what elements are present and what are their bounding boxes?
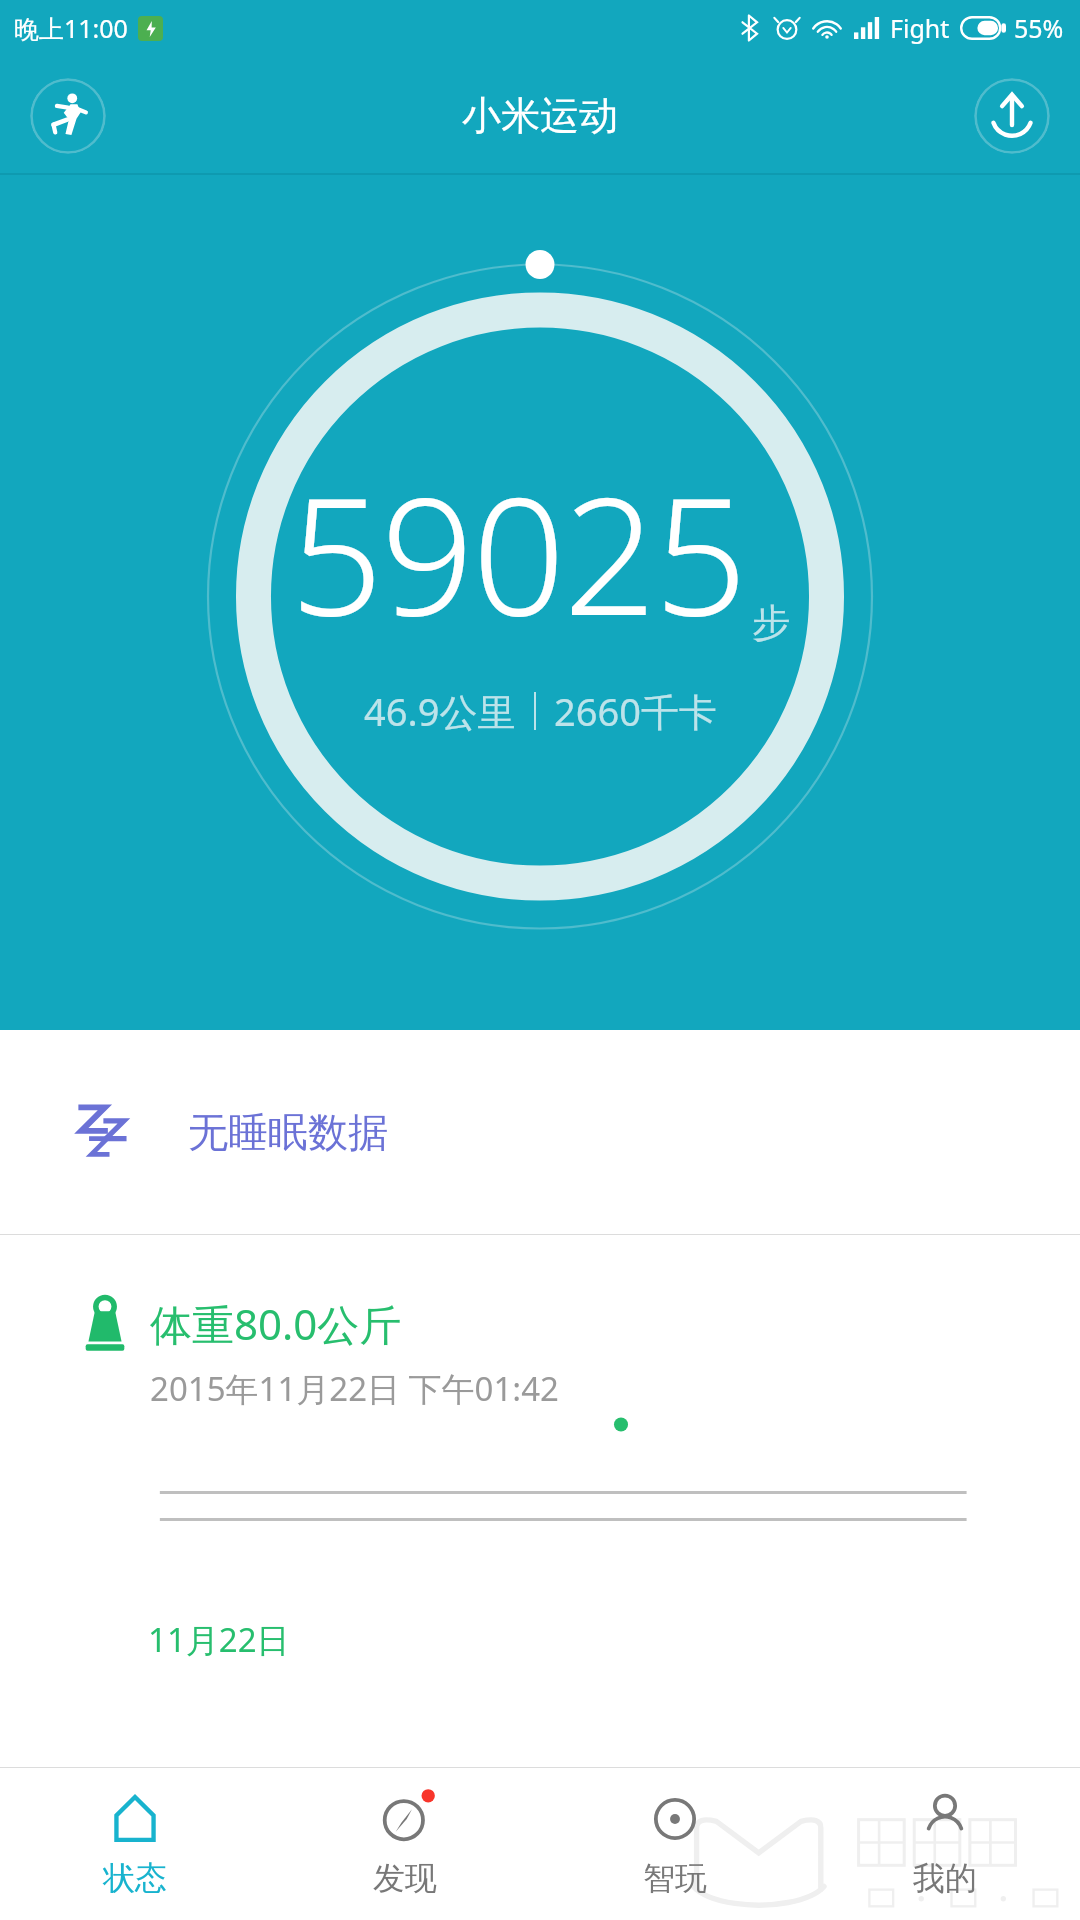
button[interactable]: 无睡眠数据 bbox=[0, 1030, 1080, 1234]
staticText: 晚上11:00 bbox=[14, 11, 128, 45]
button[interactable]: Share bbox=[974, 78, 1050, 154]
button[interactable]: 智玩 bbox=[540, 1768, 810, 1920]
button[interactable]: 状态 bbox=[0, 1768, 270, 1920]
staticText: 2660千卡 bbox=[554, 685, 717, 737]
staticText: 无睡眠数据 bbox=[188, 1107, 388, 1157]
staticText: 55% bbox=[1014, 11, 1064, 45]
staticText: 我的 bbox=[913, 1858, 977, 1898]
staticText: 体重80.0公斤 bbox=[150, 1295, 402, 1352]
staticText: 46.9公里 bbox=[364, 685, 516, 737]
staticText: 2015年11月22日 下午01:42 bbox=[150, 1366, 559, 1411]
staticText: 智玩 bbox=[643, 1858, 707, 1898]
button[interactable]: 发现 bbox=[270, 1768, 540, 1920]
button[interactable]: Start running workout bbox=[30, 78, 106, 154]
staticText: 发现 bbox=[373, 1858, 437, 1898]
button[interactable]: 体重80.0公斤 bbox=[0, 1235, 1080, 1711]
button[interactable]: 我的 bbox=[810, 1768, 1080, 1920]
staticText: 状态 bbox=[103, 1858, 167, 1898]
staticText: 步 bbox=[752, 599, 790, 647]
staticText: 11月22日 bbox=[148, 1617, 290, 1662]
staticText: 59025 bbox=[290, 441, 746, 663]
staticText: 小米运动 bbox=[462, 91, 618, 140]
staticText: Fight bbox=[890, 11, 950, 45]
